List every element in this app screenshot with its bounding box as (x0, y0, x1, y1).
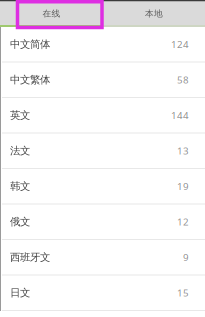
staticText: 19 (177, 180, 189, 193)
staticText: 俄文 (10, 215, 30, 228)
staticText: 144 (171, 109, 189, 122)
staticText: 法文 (10, 144, 30, 157)
staticText: 13 (177, 144, 189, 157)
staticText: 本地 (145, 8, 163, 19)
button[interactable]: 俄文 (0, 204, 205, 240)
staticText: 9 (183, 251, 189, 264)
staticText: 在线 (42, 8, 60, 19)
button[interactable]: 中文简体 (0, 27, 205, 62)
button[interactable]: 西班牙文 (0, 240, 205, 275)
button[interactable]: 韩文 (0, 169, 205, 204)
staticText: 中文繁体 (10, 73, 50, 86)
button[interactable]: 在线 (0, 2, 103, 25)
button[interactable]: 法文 (0, 133, 205, 169)
staticText: 中文简体 (10, 38, 50, 51)
staticText: 日文 (10, 286, 30, 299)
button[interactable]: 英文 (0, 98, 205, 133)
button[interactable]: 日文 (0, 275, 205, 311)
staticText: 15 (177, 286, 189, 299)
button[interactable]: 中文繁体 (0, 62, 205, 98)
staticText: 124 (171, 38, 189, 51)
button[interactable]: 本地 (103, 2, 205, 25)
staticText: 58 (177, 73, 189, 86)
staticText: 韩文 (10, 180, 30, 193)
staticText: 西班牙文 (10, 251, 50, 264)
staticText: 12 (177, 215, 189, 228)
staticText: 英文 (10, 109, 30, 122)
